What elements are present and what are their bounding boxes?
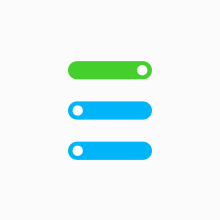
button[interactable]: First setting, on — [68, 61, 152, 79]
button[interactable]: Third setting, off — [68, 142, 152, 160]
button[interactable]: Second setting, off — [68, 101, 152, 120]
